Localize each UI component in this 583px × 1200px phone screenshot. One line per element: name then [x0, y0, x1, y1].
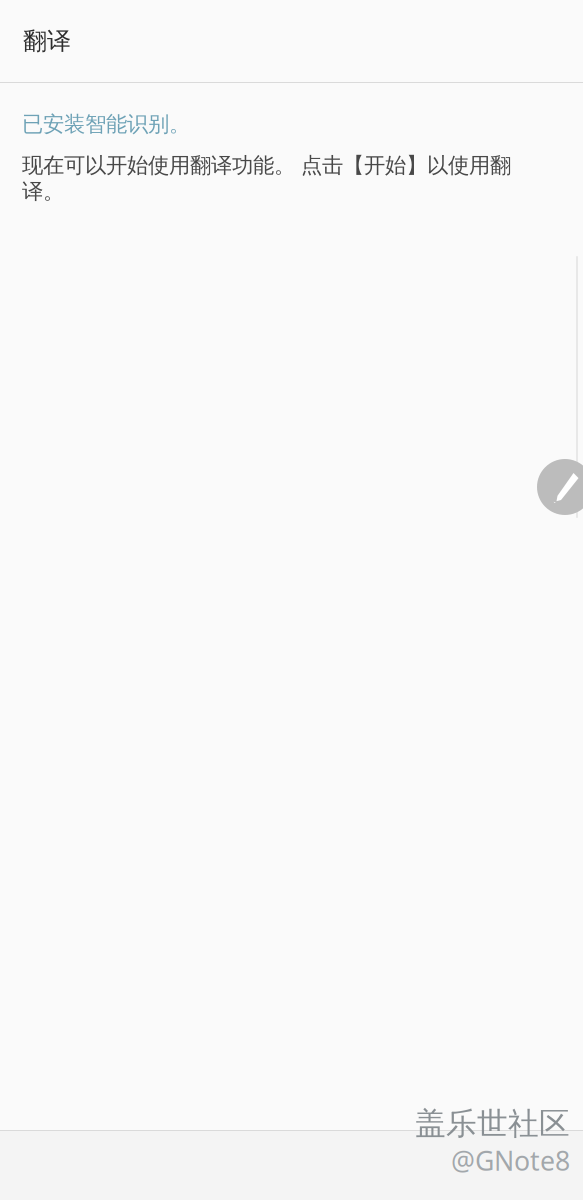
- staticText: 已安装智能识别。: [22, 111, 190, 137]
- staticText: 现在可以开始使用翻译功能。 点击【开始】以使用翻译。: [22, 152, 511, 205]
- staticText: 翻译: [23, 26, 71, 56]
- staticText: @GNote8: [451, 1143, 570, 1178]
- staticText: 盖乐世社区: [415, 1105, 570, 1143]
- button[interactable]: Compose: [537, 459, 583, 515]
